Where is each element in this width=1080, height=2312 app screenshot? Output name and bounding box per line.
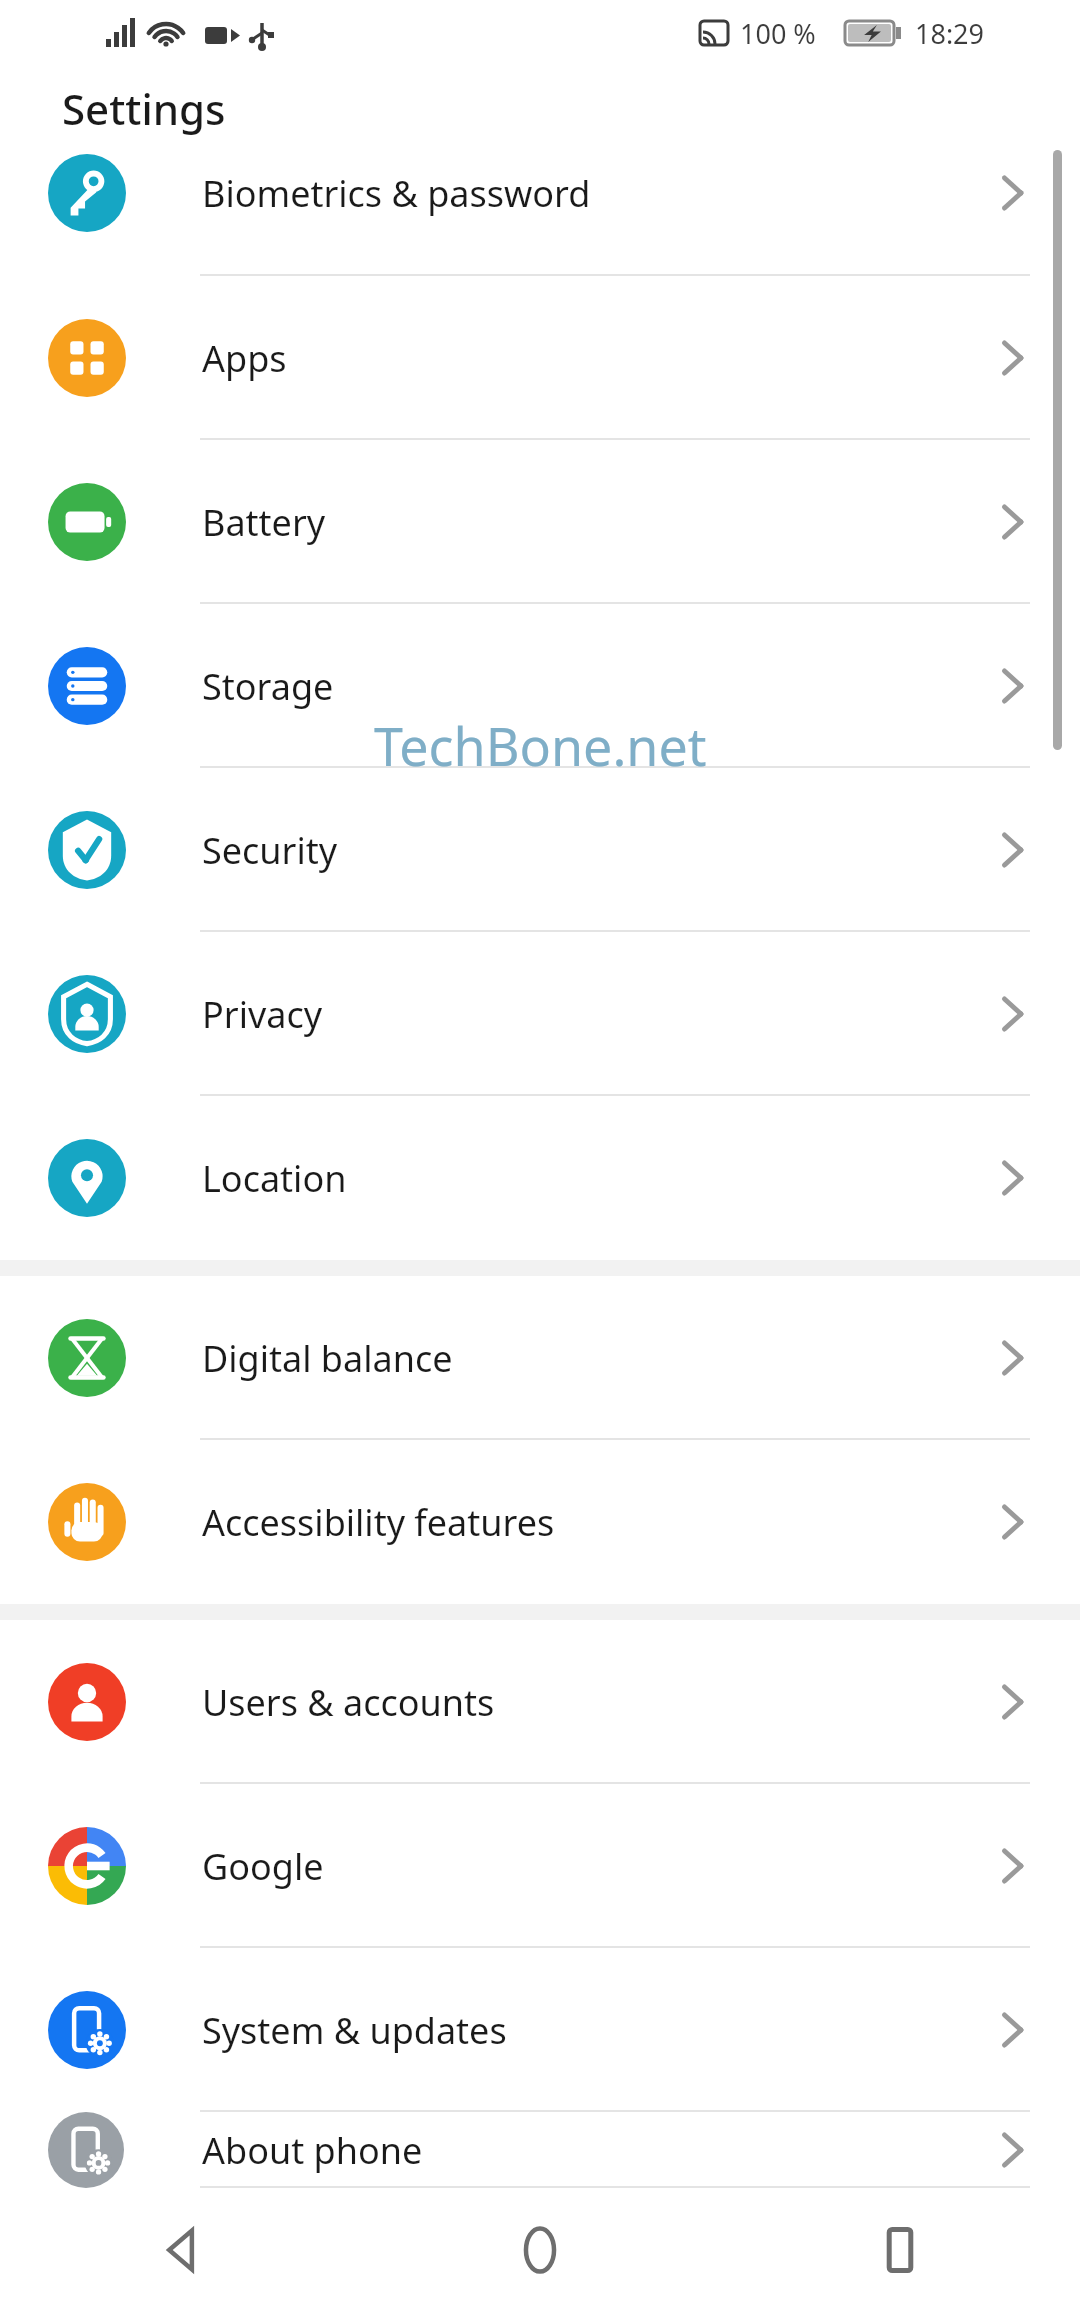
staticText: Digital balance (202, 1334, 453, 1383)
staticText: Storage (202, 662, 334, 711)
staticText: About phone (202, 2126, 423, 2175)
button[interactable]: Digital balance (0, 1276, 1080, 1440)
button[interactable]: Biometrics & password (0, 150, 1080, 276)
staticText: Settings (62, 80, 226, 137)
button[interactable]: Accessibility features (0, 1440, 1080, 1604)
staticText: Accessibility features (202, 1498, 555, 1547)
button[interactable]: System & updates (0, 1948, 1080, 2112)
button[interactable]: Security (0, 768, 1080, 932)
staticText: Google (202, 1842, 324, 1891)
staticText: Biometrics & password (202, 169, 591, 218)
staticText: TechBone.net (374, 710, 707, 781)
button[interactable]: Users & accounts (0, 1620, 1080, 1784)
button[interactable]: Location (0, 1096, 1080, 1260)
button[interactable]: About phone (0, 2112, 1080, 2188)
button[interactable]: Storage (0, 604, 1080, 768)
staticText: 100 % (740, 15, 816, 52)
button[interactable]: Google (0, 1784, 1080, 1948)
staticText: Battery (202, 498, 326, 547)
button[interactable]: Back (0, 2188, 360, 2312)
staticText: Location (202, 1154, 347, 1203)
staticText: Apps (202, 334, 287, 383)
staticText: Users & accounts (202, 1678, 495, 1727)
staticText: Privacy (202, 990, 323, 1039)
button[interactable]: Home (360, 2188, 720, 2312)
staticText: System & updates (202, 2006, 507, 2055)
button[interactable]: Battery (0, 440, 1080, 604)
staticText: 18:29 (915, 15, 985, 52)
button[interactable]: Privacy (0, 932, 1080, 1096)
button[interactable]: Apps (0, 276, 1080, 440)
staticText: Security (202, 826, 338, 875)
button[interactable]: Recent apps (720, 2188, 1080, 2312)
